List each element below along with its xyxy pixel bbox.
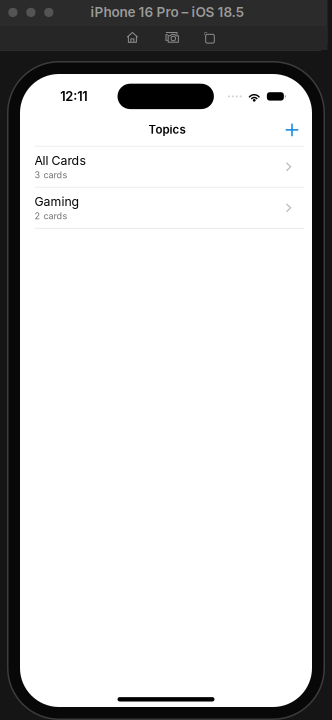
- staticText: 3 cards: [35, 169, 68, 180]
- staticText: iPhone 16 Pro – iOS 18.5: [90, 4, 244, 20]
- button[interactable]: Screenshot: [161, 28, 183, 47]
- staticText: Topics: [148, 123, 185, 137]
- staticText: 2 cards: [35, 210, 68, 221]
- button[interactable]: Add topic: [279, 117, 305, 143]
- button[interactable]: All Cards: [20, 147, 312, 188]
- button[interactable]: Home: [122, 27, 142, 47]
- staticText: All Cards: [35, 153, 86, 168]
- button[interactable]: Record Screen: [199, 28, 218, 47]
- staticText: Gaming: [35, 194, 80, 209]
- staticText: 12:11: [60, 89, 87, 104]
- button[interactable]: Gaming: [20, 188, 312, 229]
